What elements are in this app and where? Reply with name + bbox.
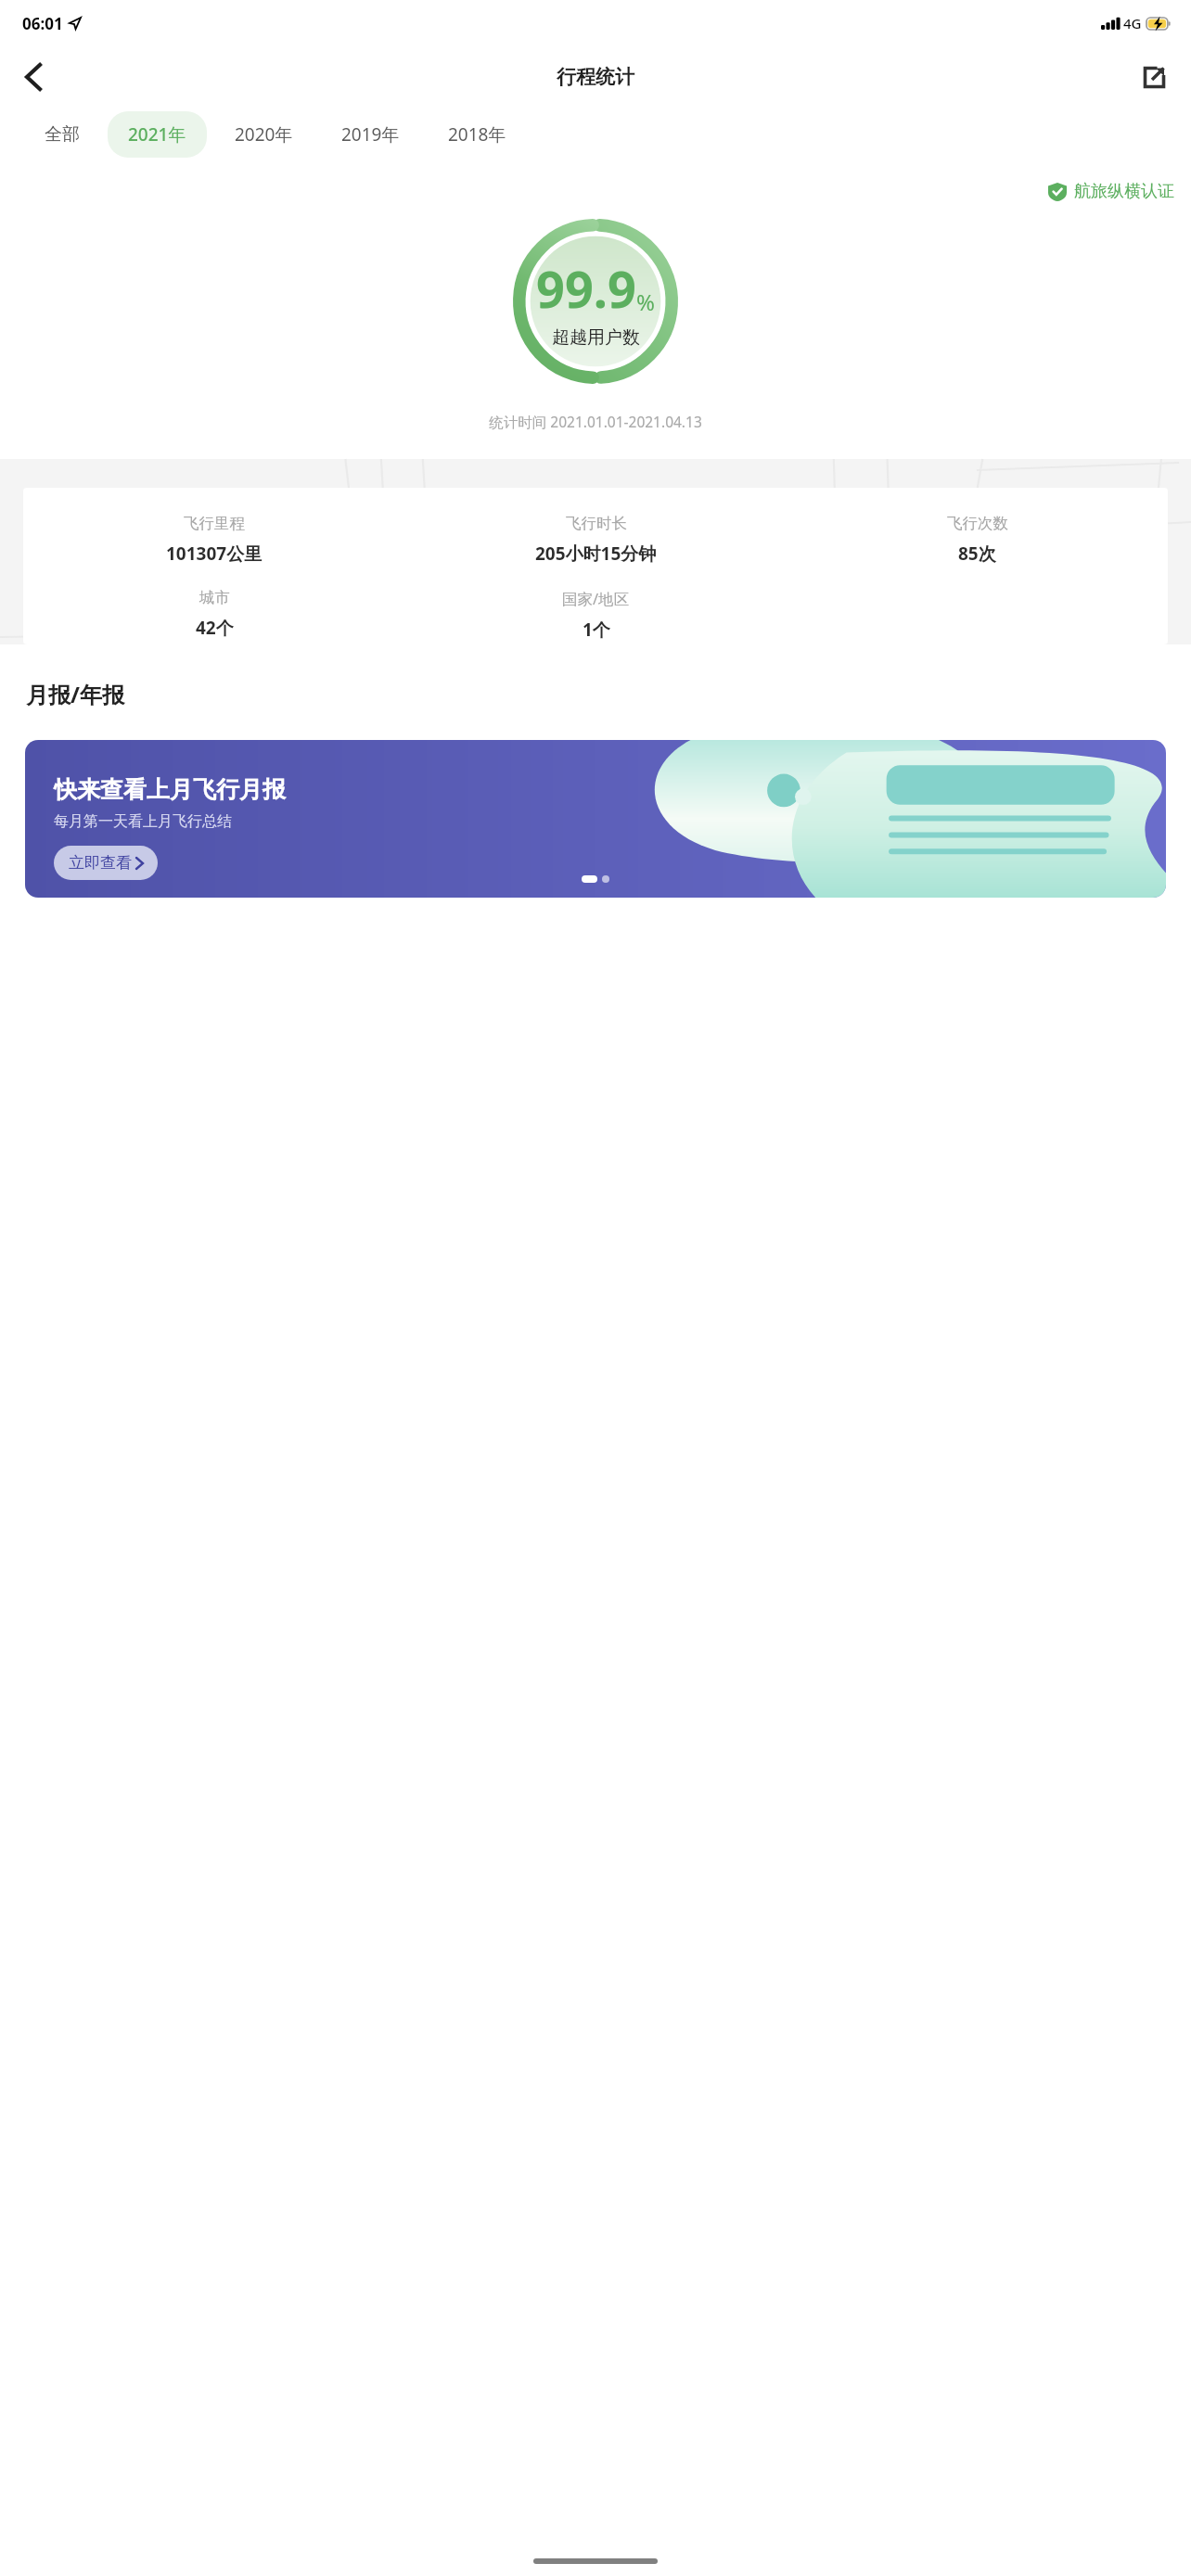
staticText: 飞行时长: [566, 514, 627, 533]
button[interactable]: 2020年: [214, 111, 314, 158]
staticText: 立即查看: [69, 853, 132, 873]
button[interactable]: 2021年: [108, 111, 207, 158]
staticText: 国家/地区: [562, 588, 630, 609]
staticText: 飞行次数: [947, 514, 1008, 533]
button[interactable]: 2019年: [321, 111, 420, 158]
button[interactable]: 快来查看上月飞行月报: [25, 740, 1166, 898]
button[interactable]: 2018年: [428, 111, 527, 158]
staticText: 快来查看上月飞行月报: [54, 775, 286, 804]
staticText: 城市: [199, 588, 230, 607]
staticText: 飞行里程: [184, 514, 245, 533]
staticText: 超越用户数: [552, 326, 640, 349]
staticText: 42个: [196, 616, 234, 640]
staticText: 2021年: [128, 122, 186, 147]
staticText: 统计时间 2021.01.01-2021.04.13: [0, 412, 1191, 431]
staticText: 06:01: [22, 13, 63, 34]
staticText: 99.9: [536, 254, 636, 323]
button[interactable]: 立即查看: [54, 846, 158, 880]
staticText: 85次: [958, 542, 996, 566]
staticText: 每月第一天看上月飞行总结: [54, 812, 232, 831]
staticText: 205小时15分钟: [535, 542, 657, 566]
button[interactable]: Back: [9, 53, 58, 101]
staticText: 2018年: [448, 122, 506, 147]
staticText: 4G: [1123, 14, 1142, 32]
staticText: 2019年: [341, 122, 400, 147]
staticText: 2020年: [235, 122, 293, 147]
button[interactable]: Share: [1130, 53, 1178, 101]
staticText: %: [636, 287, 655, 317]
staticText: 101307公里: [166, 542, 263, 566]
staticText: 月报/年报: [26, 679, 124, 709]
staticText: 1个: [583, 618, 610, 642]
button[interactable]: 全部: [24, 112, 100, 157]
staticText: 航旅纵横认证: [1074, 181, 1174, 202]
staticText: 全部: [45, 123, 80, 146]
staticText: 行程统计: [557, 65, 634, 89]
